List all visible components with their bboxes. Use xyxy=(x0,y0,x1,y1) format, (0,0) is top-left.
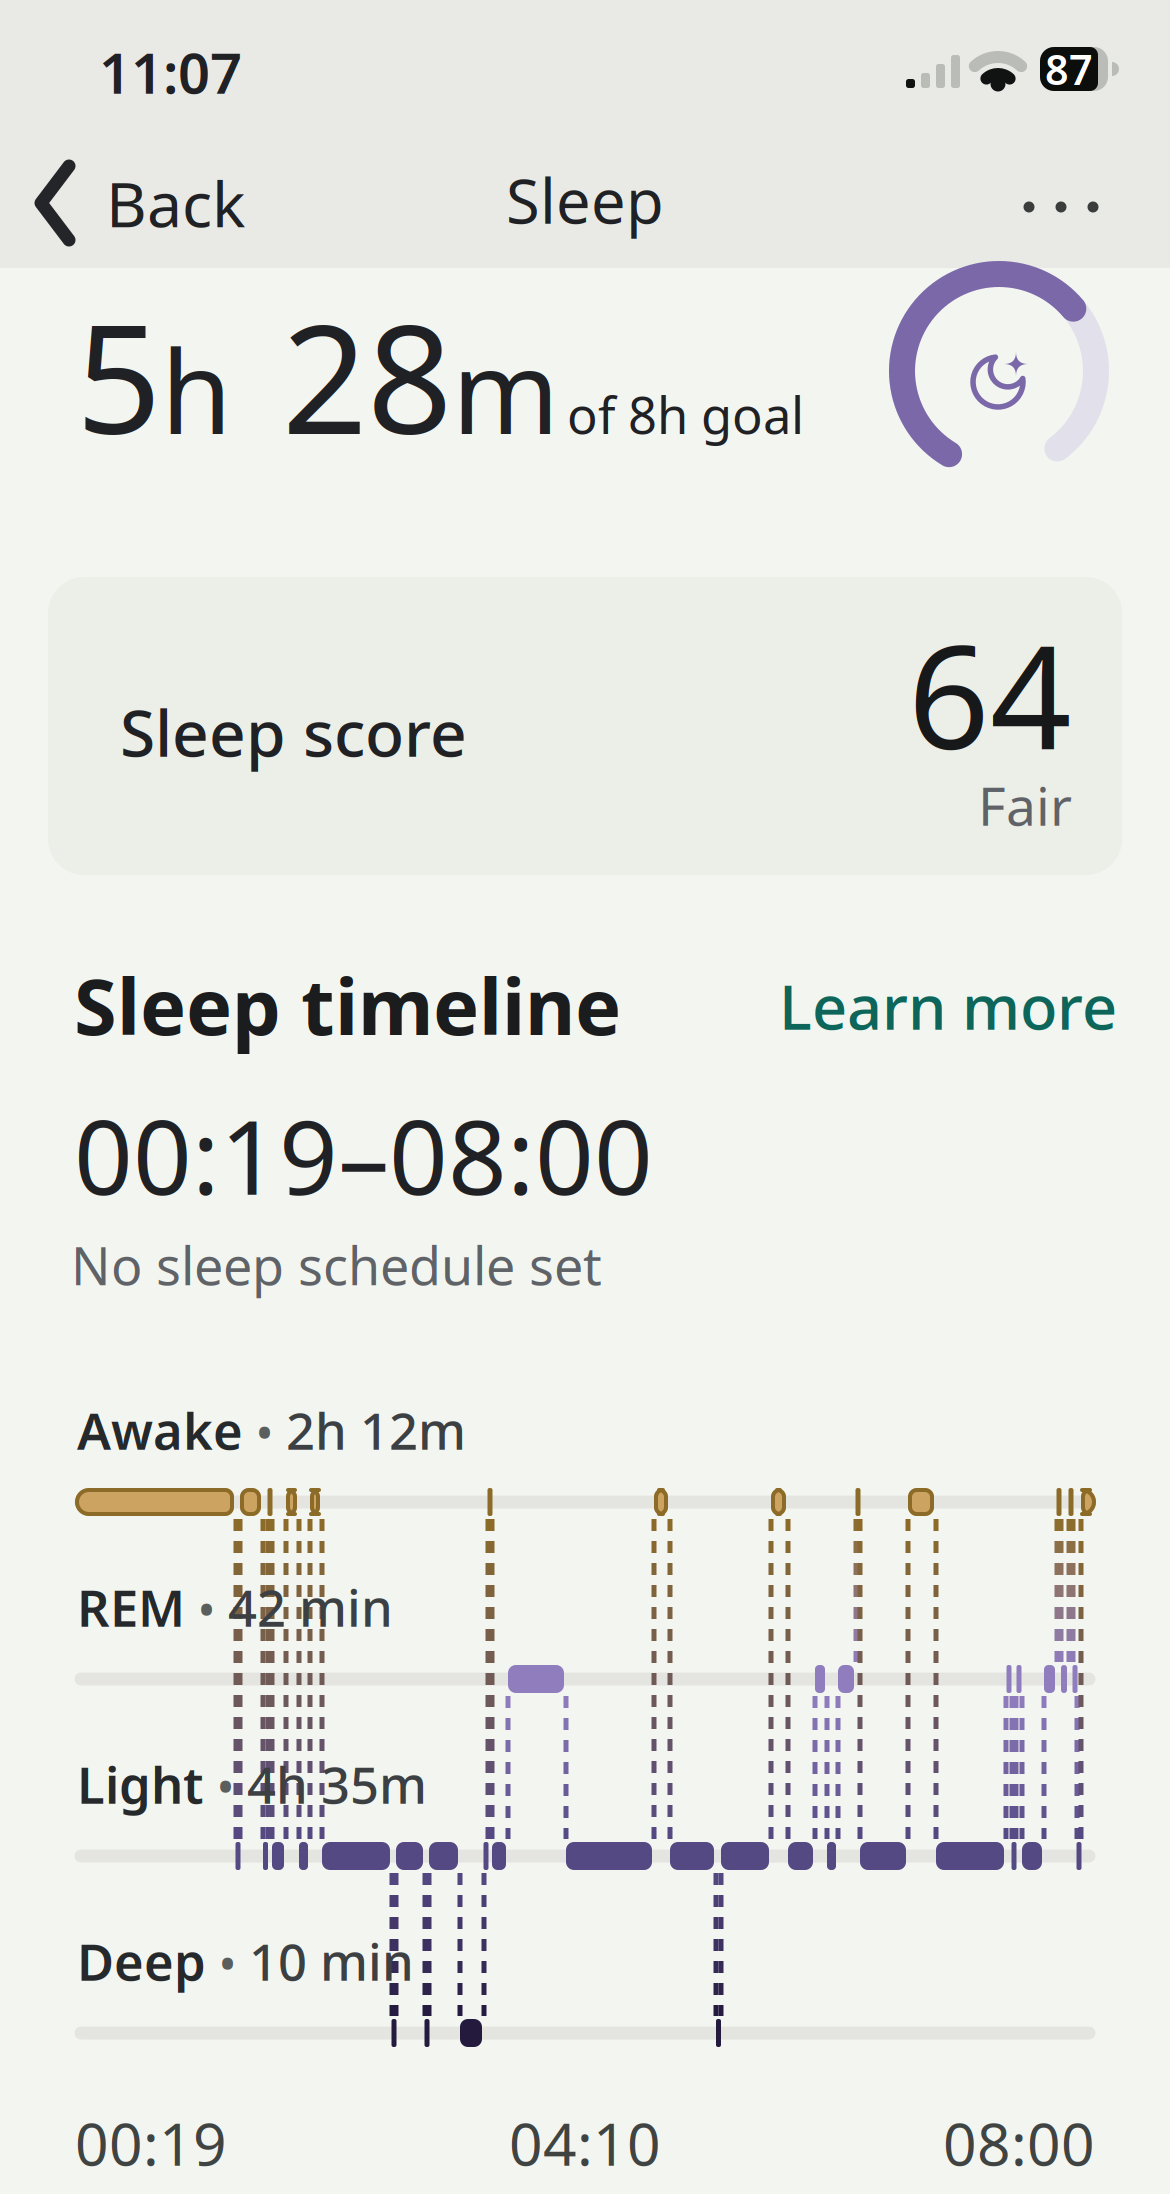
staticText: 10 min xyxy=(249,1927,414,1995)
button[interactable]: More options xyxy=(1023,201,1098,212)
staticText: 5 xyxy=(76,277,161,475)
staticText: Sleep xyxy=(506,159,664,241)
staticText: No sleep schedule set xyxy=(71,1230,602,1300)
staticText: Learn more xyxy=(779,965,1117,1047)
staticText: of 8h goal xyxy=(559,381,804,448)
staticText: Deep xyxy=(77,1927,206,1995)
staticText: REM xyxy=(77,1573,185,1641)
staticText: 4h 35m xyxy=(247,1750,427,1818)
staticText: 2 xyxy=(232,277,367,475)
staticText: Awake xyxy=(77,1396,243,1464)
staticText: Back xyxy=(106,161,245,245)
staticText: • xyxy=(217,1756,234,1816)
staticText: 00:19–08:00 xyxy=(74,1087,653,1223)
staticText: Sleep timeline xyxy=(74,954,621,1056)
staticText: 00:19 xyxy=(75,2104,227,2182)
staticText: 64 xyxy=(908,599,1072,789)
staticText: • xyxy=(198,1579,215,1639)
staticText: 08:00 xyxy=(943,2104,1095,2182)
staticText: Light xyxy=(77,1750,204,1818)
staticText: 11:07 xyxy=(99,35,242,109)
staticText: m xyxy=(452,313,559,466)
button[interactable]: Back xyxy=(34,159,245,247)
staticText: 2h 12m xyxy=(286,1396,466,1464)
button[interactable]: Learn more xyxy=(779,965,1117,1047)
staticText: • xyxy=(256,1402,273,1462)
staticText: • xyxy=(219,1933,236,1993)
staticText: Sleep score xyxy=(120,689,467,774)
staticText: 87 xyxy=(1045,42,1093,96)
staticText: 8 xyxy=(367,277,452,475)
staticText: 04:10 xyxy=(509,2104,661,2182)
staticText: 42 min xyxy=(228,1573,393,1641)
staticText: h xyxy=(161,313,232,466)
staticText: Fair xyxy=(978,770,1072,840)
button[interactable]: Sleep score xyxy=(48,577,1122,875)
